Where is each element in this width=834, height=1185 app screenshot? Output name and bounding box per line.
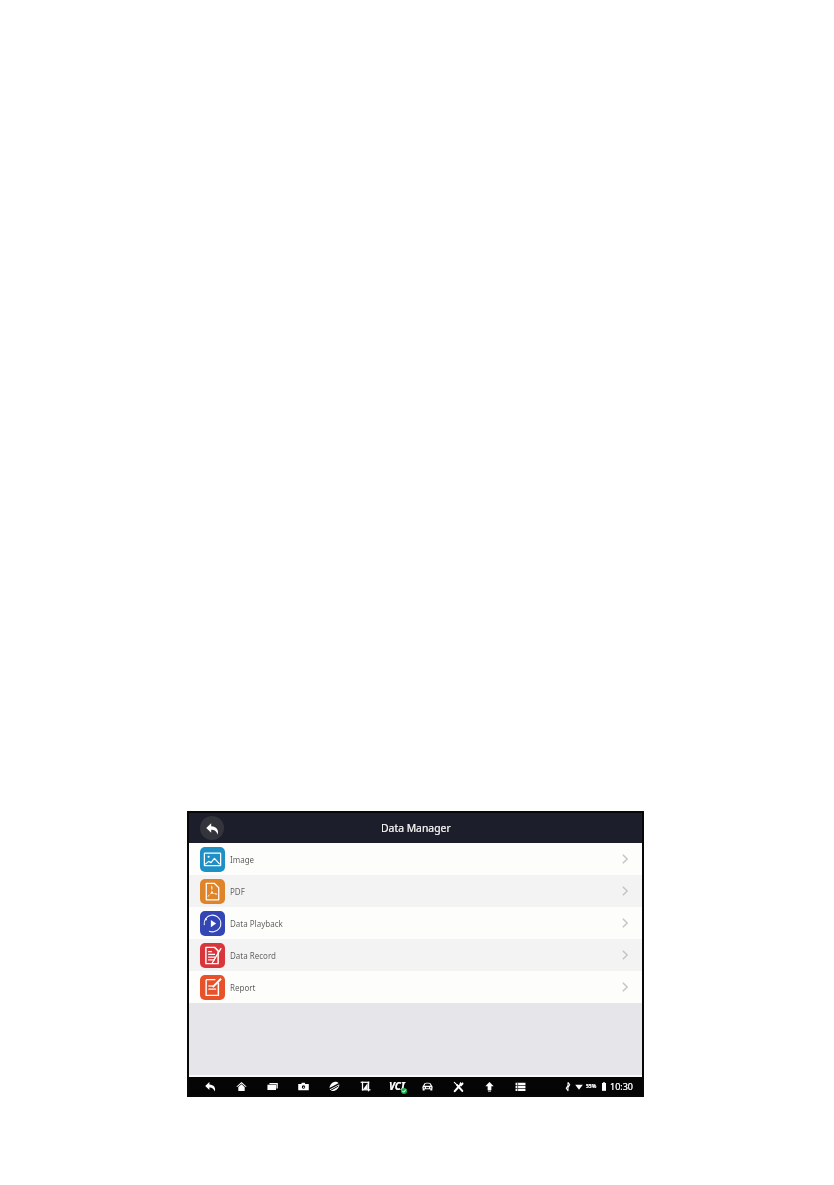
button[interactable]: Data Record	[189, 939, 642, 971]
staticText: Data Record	[230, 950, 277, 961]
button[interactable]: Disc	[319, 1077, 350, 1095]
staticText: VCI	[389, 1079, 405, 1093]
staticText: Data Playback	[230, 918, 283, 929]
button[interactable]: PDF	[189, 875, 642, 907]
button[interactable]: Recents	[257, 1077, 288, 1095]
button[interactable]: Vehicle	[412, 1077, 443, 1095]
button[interactable]: Home	[226, 1077, 257, 1095]
button[interactable]: VCI	[381, 1077, 412, 1095]
staticText: 10:30	[610, 1080, 634, 1092]
button[interactable]: Screenshot	[288, 1077, 319, 1095]
button[interactable]: Report	[189, 971, 642, 1003]
button[interactable]: Crop	[350, 1077, 381, 1095]
button[interactable]: Back	[200, 816, 224, 840]
button[interactable]: Back	[195, 1077, 226, 1095]
staticText: PDF	[230, 886, 245, 897]
staticText: Report	[230, 982, 256, 993]
button[interactable]: Upload	[474, 1077, 505, 1095]
staticText: 55%	[586, 1083, 597, 1090]
button[interactable]: Data Playback	[189, 907, 642, 939]
button[interactable]: Image	[189, 843, 642, 875]
staticText: Image	[230, 854, 255, 865]
staticText: Data Manager	[381, 821, 451, 835]
button[interactable]: Tools	[443, 1077, 474, 1095]
button[interactable]: Menu	[505, 1077, 536, 1095]
